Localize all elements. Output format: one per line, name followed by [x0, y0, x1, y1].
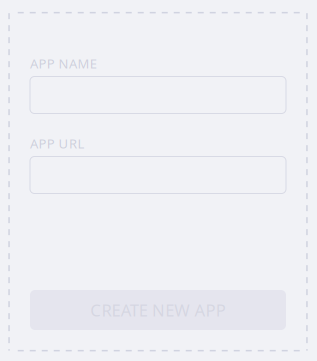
staticText: APP URL: [30, 135, 84, 152]
staticText: CREATE NEW APP: [90, 299, 226, 321]
staticText: APP NAME: [30, 55, 97, 72]
